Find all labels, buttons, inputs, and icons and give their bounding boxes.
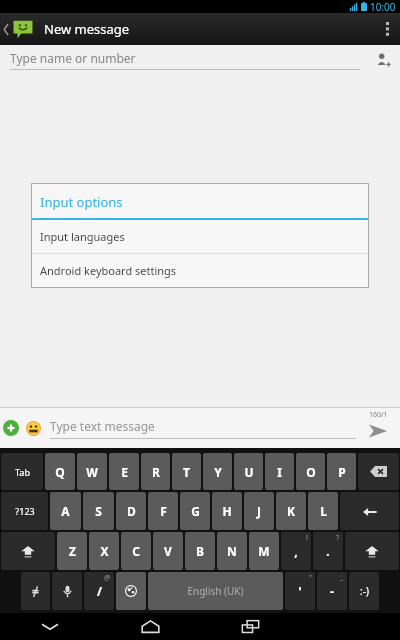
- staticText: T: [183, 464, 190, 480]
- staticText: K: [287, 503, 295, 519]
- staticText: N: [227, 543, 237, 559]
- button[interactable]: R: [141, 453, 170, 490]
- button[interactable]: shift: [345, 532, 399, 570]
- staticText: I: [277, 464, 282, 480]
- staticText: Tab: [15, 466, 30, 478]
- button[interactable]: Android keyboard settings: [32, 254, 368, 287]
- staticText: 160/1: [369, 410, 388, 420]
- staticText: C: [132, 543, 140, 559]
- staticText: X: [100, 543, 109, 559]
- button[interactable]: T: [172, 453, 201, 490]
- staticText: J: [257, 503, 261, 519]
- button[interactable]: globe: [116, 572, 146, 610]
- staticText: B: [196, 543, 204, 559]
- staticText: A: [61, 503, 70, 519]
- button[interactable]: :-): [349, 572, 379, 610]
- button[interactable]: O: [296, 453, 325, 490]
- staticText: :-): [360, 584, 369, 598]
- button[interactable]: W: [77, 453, 107, 490]
- button[interactable]: Hide keyboard: [0, 613, 100, 640]
- button[interactable]: S: [83, 492, 114, 530]
- staticText: W: [86, 464, 98, 480]
- button[interactable]: L: [308, 492, 338, 530]
- button[interactable]: I: [265, 453, 294, 490]
- button[interactable]: mic: [52, 572, 82, 610]
- button[interactable]: C: [121, 532, 151, 570]
- staticText: 10:00: [370, 0, 396, 13]
- button[interactable]: G: [180, 492, 210, 530]
- staticText: _: [340, 573, 344, 583]
- staticText: V: [164, 543, 172, 559]
- staticText: O: [306, 464, 316, 480]
- staticText: New message: [44, 20, 130, 38]
- button[interactable]: ?123: [1, 492, 48, 530]
- button[interactable]: Q: [45, 453, 75, 490]
- button[interactable]: U: [234, 453, 263, 490]
- button[interactable]: enter: [340, 492, 399, 530]
- staticText: Type text message: [50, 418, 155, 434]
- staticText: Input options: [40, 193, 123, 211]
- button[interactable]: Home: [100, 613, 200, 640]
- staticText: Type name or number: [10, 50, 136, 66]
- button[interactable]: V: [153, 532, 183, 570]
- button[interactable]: Insert emoji: [22, 417, 44, 439]
- button[interactable]: Send: [356, 408, 400, 448]
- button[interactable]: E: [109, 453, 139, 490]
- staticText: Y: [214, 464, 222, 480]
- button[interactable]: Z: [57, 532, 87, 570]
- button[interactable]: P: [327, 453, 356, 490]
- staticText: ?123: [15, 505, 35, 517]
- button[interactable]: F: [148, 492, 178, 530]
- button[interactable]: Tab: [1, 453, 43, 490]
- staticText: ,: [294, 543, 298, 559]
- button[interactable]: /: [84, 572, 114, 610]
- button[interactable]: B: [185, 532, 215, 570]
- button[interactable]: shift: [1, 532, 55, 570]
- button[interactable]: Attach: [0, 417, 22, 439]
- button[interactable]: More options: [374, 13, 400, 45]
- staticText: R: [152, 464, 160, 480]
- staticText: ': [298, 583, 302, 599]
- staticText: -: [330, 583, 334, 599]
- staticText: S: [95, 503, 102, 519]
- button[interactable]: Add contact: [366, 45, 400, 75]
- staticText: Input languages: [40, 229, 125, 244]
- staticText: ≠: [32, 583, 39, 599]
- button[interactable]: ': [285, 572, 315, 610]
- staticText: Z: [69, 543, 76, 559]
- button[interactable]: Y: [203, 453, 232, 490]
- staticText: G: [191, 503, 200, 519]
- staticText: D: [127, 503, 136, 519]
- staticText: P: [338, 464, 346, 480]
- button[interactable]: K: [276, 492, 306, 530]
- staticText: ": [309, 573, 312, 583]
- staticText: M: [258, 543, 270, 559]
- button[interactable]: A: [50, 492, 81, 530]
- button[interactable]: H: [212, 492, 242, 530]
- button[interactable]: D: [116, 492, 146, 530]
- staticText: @: [104, 573, 111, 583]
- staticText: Android keyboard settings: [40, 263, 177, 278]
- staticText: H: [222, 503, 232, 519]
- button[interactable]: M: [249, 532, 279, 570]
- staticText: Q: [55, 464, 65, 480]
- button[interactable]: J: [244, 492, 274, 530]
- staticText: L: [320, 503, 327, 519]
- button[interactable]: .: [313, 532, 343, 570]
- button[interactable]: -: [317, 572, 347, 610]
- button[interactable]: ,: [281, 532, 311, 570]
- button[interactable]: sym: [21, 572, 50, 610]
- staticText: F: [160, 503, 167, 519]
- button[interactable]: X: [89, 532, 119, 570]
- button[interactable]: N: [217, 532, 247, 570]
- button[interactable]: del: [358, 453, 399, 490]
- staticText: E: [121, 464, 128, 480]
- button[interactable]: Recent apps: [200, 613, 300, 640]
- button[interactable]: Input languages: [32, 220, 368, 253]
- staticText: U: [244, 464, 254, 480]
- button[interactable]: English (UK): [148, 572, 283, 610]
- staticText: ?: [336, 533, 340, 543]
- staticText: English (UK): [187, 584, 244, 598]
- staticText: /: [97, 583, 102, 599]
- button[interactable]: Navigate up: [0, 13, 37, 45]
